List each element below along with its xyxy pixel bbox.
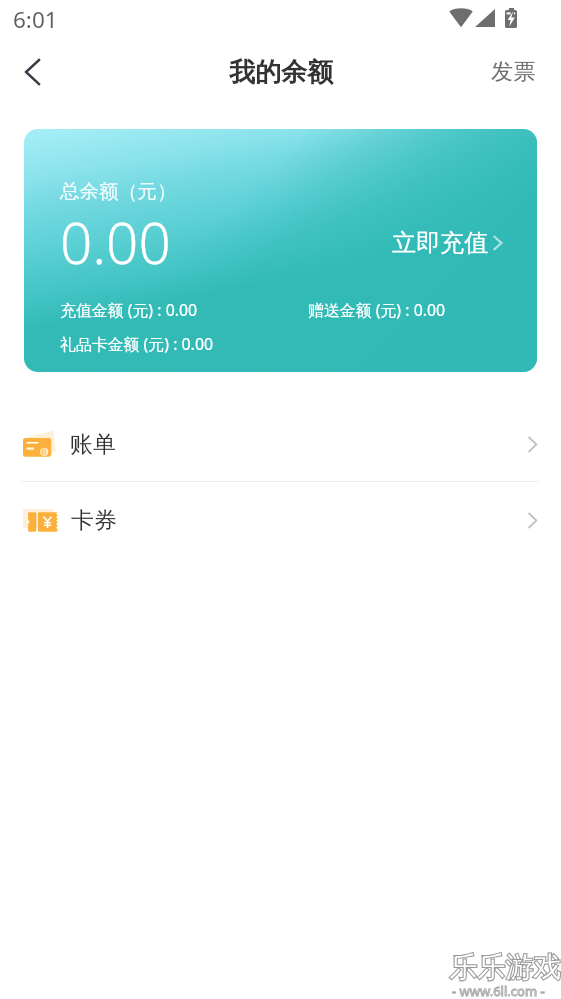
staticText: 卡券 — [71, 506, 117, 535]
staticText: 礼品卡金额 (元) : 0.00 — [60, 333, 214, 355]
staticText: 立即充值 — [392, 228, 489, 258]
staticText: 我的余额 — [229, 56, 333, 89]
button[interactable]: 账单 — [0, 406, 561, 482]
button[interactable]: 立即充值 — [392, 228, 502, 258]
staticText: 发票 — [491, 58, 536, 86]
staticText: 总余额（元） — [60, 179, 177, 203]
staticText: 充值金额 (元) : 0.00 — [60, 299, 198, 321]
staticText: 账单 — [70, 430, 116, 459]
staticText: 赠送金额 (元) : 0.00 — [308, 299, 446, 321]
staticText: 0.00 — [60, 203, 171, 280]
staticText: 6:01 — [13, 4, 58, 35]
staticText: - www.6ll.com - — [452, 982, 545, 999]
button[interactable]: Back — [0, 45, 64, 99]
button[interactable]: 卡券 — [0, 482, 561, 558]
staticText: 乐乐游戏 — [449, 950, 561, 985]
button[interactable]: 发票 — [475, 46, 561, 98]
